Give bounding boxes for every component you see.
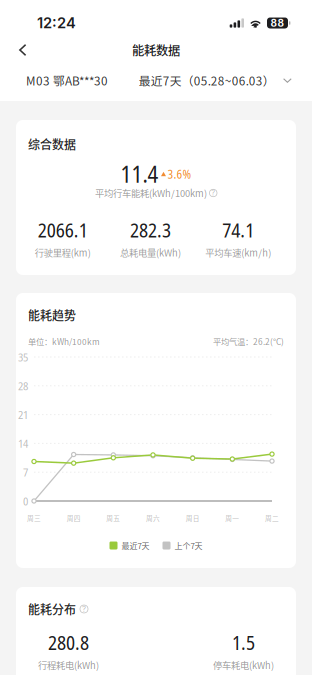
staticText: 28 xyxy=(18,378,28,393)
staticText: 2066.1 xyxy=(38,217,88,243)
button[interactable]: 返回 xyxy=(0,40,40,60)
staticText: 综合数据 xyxy=(28,135,76,153)
staticText: 1.5 xyxy=(232,629,255,656)
staticText: 行程耗电(kWh) xyxy=(38,658,99,672)
staticText: 最近7天 xyxy=(121,540,149,551)
staticText: 上个7天 xyxy=(174,540,202,551)
staticText: 21 xyxy=(18,407,28,422)
staticText: 14 xyxy=(18,436,28,451)
button[interactable]: 最近7天（05.28~06.03） xyxy=(139,72,312,89)
staticText: 周三 xyxy=(27,513,41,523)
staticText: 能耗数据 xyxy=(132,41,180,59)
staticText: 行驶里程(km) xyxy=(35,246,91,259)
staticText: ? xyxy=(211,188,215,197)
staticText: 周二 xyxy=(265,513,279,523)
staticText: 单位：kWh/100km xyxy=(28,335,100,347)
staticText: 88 xyxy=(270,17,284,29)
staticText: 总耗电量(kWh) xyxy=(120,246,181,259)
staticText: 0 xyxy=(23,493,28,509)
staticText: 12:24 xyxy=(37,14,76,32)
staticText: 74.1 xyxy=(222,217,254,243)
staticText: 平均车速(km/h) xyxy=(205,246,271,259)
staticText: 3.6% xyxy=(167,166,191,182)
staticText: 282.3 xyxy=(130,217,171,243)
staticText: 7 xyxy=(23,464,28,480)
staticText: ? xyxy=(82,604,86,614)
staticText: 11.4 xyxy=(120,159,158,189)
staticText: 周五 xyxy=(106,513,120,523)
staticText: 280.8 xyxy=(48,629,89,656)
button[interactable]: M03 鄂AB***30 xyxy=(0,72,116,89)
staticText: 平均气温：26.2(°C) xyxy=(213,335,284,347)
staticText: 周日 xyxy=(186,513,200,523)
staticText: 周六 xyxy=(146,513,160,523)
staticText: 能耗分布 xyxy=(28,600,76,618)
staticText: 周四 xyxy=(67,513,81,523)
staticText: 停车耗电(kWh) xyxy=(213,658,274,672)
staticText: 最近7天（05.28~06.03） xyxy=(139,72,275,89)
staticText: 平均行车能耗(kWh/100km) xyxy=(95,186,207,200)
staticText: 能耗趋势 xyxy=(28,306,76,324)
staticText: M03 鄂AB***30 xyxy=(26,72,108,89)
staticText: 35 xyxy=(18,349,28,365)
staticText: 周一 xyxy=(225,513,239,523)
